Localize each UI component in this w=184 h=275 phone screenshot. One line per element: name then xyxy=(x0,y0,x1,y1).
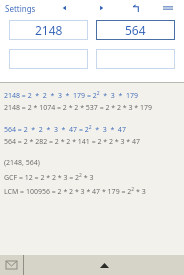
staticText: 564 = 2 * 282 = 2 * 2 * 141 = 2 * 2 * 3 … xyxy=(4,137,140,147)
staticText: (2148, 564) xyxy=(4,158,40,168)
button[interactable]: Mail xyxy=(0,255,23,275)
button[interactable]: Next xyxy=(90,0,112,16)
button[interactable]: Settings xyxy=(5,3,36,14)
button[interactable] xyxy=(96,49,175,69)
staticText: 564 xyxy=(125,22,146,38)
button[interactable] xyxy=(9,49,88,69)
button[interactable]: Undo xyxy=(125,0,147,16)
button[interactable]: Menu xyxy=(157,0,179,16)
staticText: 2148 xyxy=(35,22,63,38)
button[interactable]: Previous xyxy=(54,0,76,16)
staticText: GCF = 12 = 2 * 2 * 3 = 22 * 3 xyxy=(4,172,94,182)
staticText: 2148 = 2 * 2 * 3 * 179 = 22 * 3 * 179 xyxy=(4,90,138,100)
button[interactable]: 564 xyxy=(96,20,175,40)
button[interactable]: Expand xyxy=(24,255,184,275)
staticText: Settings xyxy=(5,3,36,14)
staticText: LCM = 100956 = 2 * 2 * 3 * 47 * 179 = 22… xyxy=(4,186,146,196)
button[interactable]: 2148 xyxy=(9,20,88,40)
staticText: 2148 = 2 * 1074 = 2 * 2 * 537 = 2 * 2 * … xyxy=(4,103,152,113)
staticText: 564 = 2 * 2 * 3 * 47 = 22 * 3 * 47 xyxy=(4,124,126,134)
